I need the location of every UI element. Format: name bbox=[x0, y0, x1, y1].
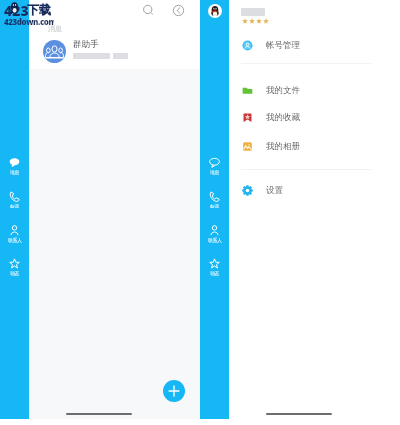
button[interactable]: 群助手 bbox=[29, 35, 200, 67]
staticText: 下载 bbox=[27, 2, 51, 17]
button[interactable]: 消息 bbox=[200, 151, 229, 181]
staticText: 电话 bbox=[10, 204, 19, 210]
button[interactable]: 帐号管理 bbox=[229, 32, 400, 58]
button[interactable]: 我的收藏 bbox=[229, 104, 400, 130]
button[interactable]: New chat bbox=[163, 380, 185, 402]
staticText: 联系人 bbox=[208, 238, 222, 244]
button[interactable]: 联系人 bbox=[200, 219, 229, 249]
button[interactable]: 动态 bbox=[200, 252, 229, 282]
staticText: 设置 bbox=[266, 185, 283, 196]
staticText: 群助手 bbox=[73, 39, 99, 50]
staticText: 帐号管理 bbox=[266, 40, 300, 51]
staticText: 423down.com bbox=[4, 16, 54, 27]
staticText: 消息 bbox=[210, 170, 219, 176]
button[interactable]: Profile bbox=[208, 4, 222, 18]
button[interactable]: Night mode bbox=[169, 1, 188, 20]
staticText: 我的收藏 bbox=[266, 112, 300, 123]
button[interactable]: Search bbox=[139, 1, 158, 20]
staticText: 423 bbox=[4, 1, 29, 20]
staticText: 联系人 bbox=[8, 238, 22, 244]
staticText: 电话 bbox=[210, 204, 219, 210]
staticText: 动态 bbox=[10, 271, 19, 277]
button[interactable]: 电话 bbox=[0, 185, 29, 215]
staticText: 我的文件 bbox=[266, 85, 300, 96]
button[interactable]: 我的文件 bbox=[229, 77, 400, 103]
staticText: 我的相册 bbox=[266, 141, 300, 152]
button[interactable]: 我的相册 bbox=[229, 133, 400, 159]
button[interactable]: 电话 bbox=[200, 185, 229, 215]
button[interactable]: 设置 bbox=[229, 177, 400, 203]
button[interactable]: 动态 bbox=[0, 252, 29, 282]
staticText: 动态 bbox=[210, 271, 219, 277]
staticText: 消息 bbox=[48, 24, 62, 33]
button[interactable]: 消息 bbox=[0, 151, 29, 181]
button[interactable]: 联系人 bbox=[0, 219, 29, 249]
staticText: 消息 bbox=[10, 170, 19, 176]
